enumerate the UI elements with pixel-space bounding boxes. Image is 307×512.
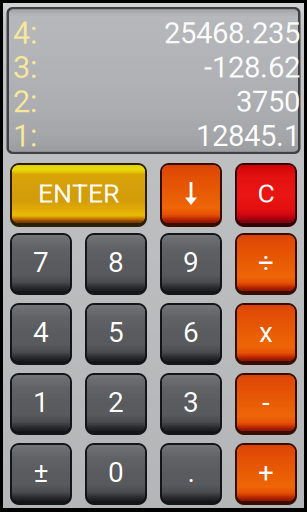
staticText: + xyxy=(258,456,274,489)
staticText: 9 xyxy=(183,246,199,279)
staticText: 3750 xyxy=(236,85,300,119)
staticText: 1: xyxy=(13,118,37,154)
staticText: ÷ xyxy=(258,246,274,279)
staticText: 4 xyxy=(33,316,49,349)
staticText: 3: xyxy=(13,49,37,85)
button[interactable]: ÷ xyxy=(235,233,297,295)
button[interactable]: 1 xyxy=(10,373,72,435)
staticText: 1 xyxy=(33,386,49,419)
button[interactable]: 5 xyxy=(85,303,147,365)
staticText: 6 xyxy=(183,316,199,349)
button[interactable]: Drop xyxy=(160,163,222,227)
button[interactable]: C xyxy=(235,163,297,227)
staticText: 8 xyxy=(108,246,124,279)
button[interactable]: 0 xyxy=(85,443,147,505)
staticText: . xyxy=(187,456,194,489)
button[interactable]: ENTER xyxy=(10,163,147,227)
staticText: 5 xyxy=(108,316,124,349)
button[interactable]: ± xyxy=(10,443,72,505)
button[interactable]: x xyxy=(235,303,297,365)
button[interactable]: 6 xyxy=(160,303,222,365)
button[interactable]: - xyxy=(235,373,297,435)
button[interactable]: . xyxy=(160,443,222,505)
staticText: 2 xyxy=(108,386,124,419)
button[interactable]: 8 xyxy=(85,233,147,295)
staticText: x xyxy=(259,316,273,349)
staticText: 2: xyxy=(13,84,37,120)
staticText: 12845.1 xyxy=(196,119,300,153)
staticText: ENTER xyxy=(38,178,119,209)
staticText: - xyxy=(262,386,270,419)
staticText: 7 xyxy=(33,246,49,279)
button[interactable]: + xyxy=(235,443,297,505)
button[interactable]: 2 xyxy=(85,373,147,435)
button[interactable]: 7 xyxy=(10,233,72,295)
staticText: 0 xyxy=(108,456,124,489)
staticText: C xyxy=(257,178,274,209)
button[interactable]: 9 xyxy=(160,233,222,295)
button[interactable]: 3 xyxy=(160,373,222,435)
button[interactable]: 4 xyxy=(10,303,72,365)
staticText: 3 xyxy=(183,386,199,419)
staticText: 4: xyxy=(13,15,37,51)
staticText: -128.62 xyxy=(204,50,300,85)
staticText: ± xyxy=(33,456,48,489)
staticText: 25468.235 xyxy=(164,16,300,50)
